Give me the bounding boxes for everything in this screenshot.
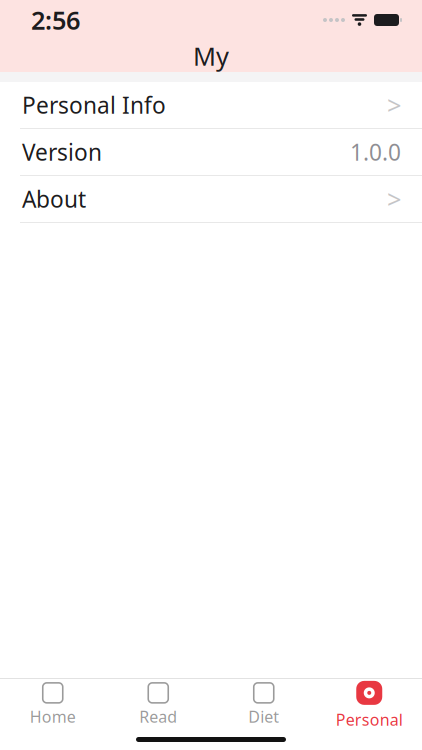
staticText: Personal Info <box>22 90 166 120</box>
staticText: Home <box>30 706 76 727</box>
button[interactable]: Read <box>105 680 211 730</box>
button[interactable]: Version <box>0 129 422 175</box>
staticText: My <box>193 39 229 73</box>
button[interactable]: Home <box>0 680 105 730</box>
staticText: > <box>387 88 401 122</box>
staticText: Diet <box>248 706 279 727</box>
staticText: Personal <box>336 709 403 730</box>
staticText: > <box>387 182 401 216</box>
staticText: About <box>22 184 86 214</box>
staticText: Read <box>139 706 177 727</box>
button[interactable]: Personal <box>316 680 422 730</box>
button[interactable]: About <box>0 176 422 222</box>
staticText: Version <box>22 137 102 167</box>
staticText: 1.0.0 <box>350 137 401 167</box>
button[interactable]: Personal Info <box>0 82 422 128</box>
staticText: 2:56 <box>31 3 80 37</box>
button[interactable]: Diet <box>211 680 316 730</box>
